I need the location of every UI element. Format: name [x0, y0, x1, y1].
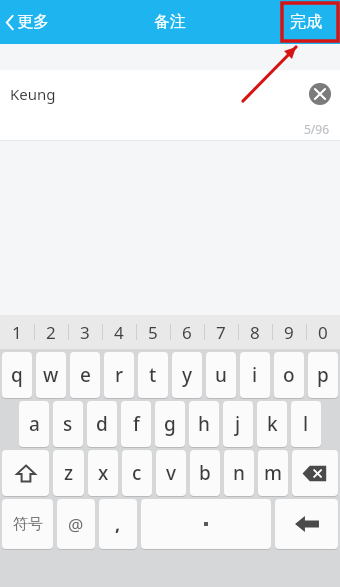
button[interactable]: f	[121, 401, 151, 447]
staticText: i	[252, 362, 258, 388]
staticText: x	[98, 460, 109, 486]
button[interactable]: q	[2, 352, 32, 398]
button[interactable]: a	[19, 401, 49, 447]
button[interactable]: 4	[102, 315, 136, 349]
staticText: 6	[182, 321, 192, 344]
staticText: t	[149, 362, 157, 388]
button[interactable]: 6	[170, 315, 204, 349]
button[interactable]: s	[53, 401, 83, 447]
button[interactable]: 1	[0, 315, 34, 349]
staticText: f	[133, 411, 140, 437]
staticText: a	[29, 411, 40, 437]
staticText: 3	[80, 321, 90, 344]
staticText: r	[115, 362, 124, 388]
staticText: s	[63, 411, 73, 437]
staticText: d	[96, 411, 108, 437]
staticText: l	[303, 411, 309, 437]
button[interactable]: i	[240, 352, 270, 398]
staticText: e	[80, 362, 91, 388]
button[interactable]: ,	[99, 499, 137, 549]
staticText: h	[198, 411, 210, 437]
staticText: 8	[250, 321, 260, 344]
staticText: q	[11, 362, 23, 388]
button[interactable]: 0	[306, 315, 340, 349]
staticText: 7	[216, 321, 226, 344]
staticText: z	[64, 460, 74, 486]
staticText: 更多	[17, 12, 49, 32]
button[interactable]: z	[53, 450, 84, 496]
staticText: 备注	[154, 12, 186, 32]
staticText: Keung	[10, 84, 56, 104]
button[interactable]: b	[190, 450, 220, 496]
staticText: @	[68, 513, 84, 536]
staticText: m	[264, 460, 282, 486]
staticText: p	[317, 362, 329, 388]
button[interactable]: t	[138, 352, 168, 398]
button[interactable]: o	[274, 352, 304, 398]
staticText: 1	[12, 321, 22, 344]
staticText: 5	[148, 321, 158, 344]
staticText: 4	[114, 321, 124, 344]
staticText: j	[235, 411, 241, 437]
button[interactable]: m	[258, 450, 288, 496]
button[interactable]: Shift	[2, 450, 49, 496]
button[interactable]: 更多	[0, 6, 59, 38]
button[interactable]: u	[206, 352, 236, 398]
staticText: 符号	[13, 515, 43, 534]
staticText: b	[199, 460, 211, 486]
button[interactable]: Space	[141, 499, 271, 549]
button[interactable]: 9	[272, 315, 306, 349]
button[interactable]: k	[257, 401, 287, 447]
staticText: k	[267, 411, 278, 437]
staticText: 9	[284, 321, 294, 344]
staticText: u	[215, 362, 227, 388]
staticText: 2	[46, 321, 56, 344]
staticText: 5/96	[304, 121, 330, 137]
button[interactable]: Backspace	[292, 450, 338, 496]
button[interactable]: Enter	[275, 499, 338, 549]
staticText: y	[182, 362, 193, 388]
button[interactable]: y	[172, 352, 202, 398]
button[interactable]: n	[224, 450, 254, 496]
button[interactable]: @	[57, 499, 95, 549]
button[interactable]: g	[155, 401, 185, 447]
button[interactable]: r	[104, 352, 134, 398]
button[interactable]: p	[308, 352, 338, 398]
button[interactable]: 7	[204, 315, 238, 349]
button[interactable]: Clear text	[309, 83, 331, 105]
staticText: ,	[115, 512, 121, 537]
button[interactable]: v	[156, 450, 186, 496]
button[interactable]: w	[36, 352, 66, 398]
button[interactable]: 8	[238, 315, 272, 349]
button[interactable]: 2	[34, 315, 68, 349]
staticText: c	[132, 460, 142, 486]
button[interactable]: x	[88, 450, 118, 496]
button[interactable]: h	[189, 401, 219, 447]
button[interactable]: l	[291, 401, 321, 447]
button[interactable]: c	[122, 450, 152, 496]
staticText: o	[283, 362, 295, 388]
staticText: n	[233, 460, 245, 486]
staticText: w	[43, 362, 59, 388]
staticText: g	[164, 411, 176, 437]
staticText: 完成	[290, 12, 322, 32]
button[interactable]: j	[223, 401, 253, 447]
button[interactable]: 5	[136, 315, 170, 349]
button[interactable]: e	[70, 352, 100, 398]
button[interactable]: 完成	[280, 6, 332, 38]
staticText: v	[166, 460, 177, 486]
button[interactable]: 3	[68, 315, 102, 349]
button[interactable]: 符号	[2, 499, 53, 549]
staticText: 0	[318, 321, 328, 344]
button[interactable]: d	[87, 401, 117, 447]
